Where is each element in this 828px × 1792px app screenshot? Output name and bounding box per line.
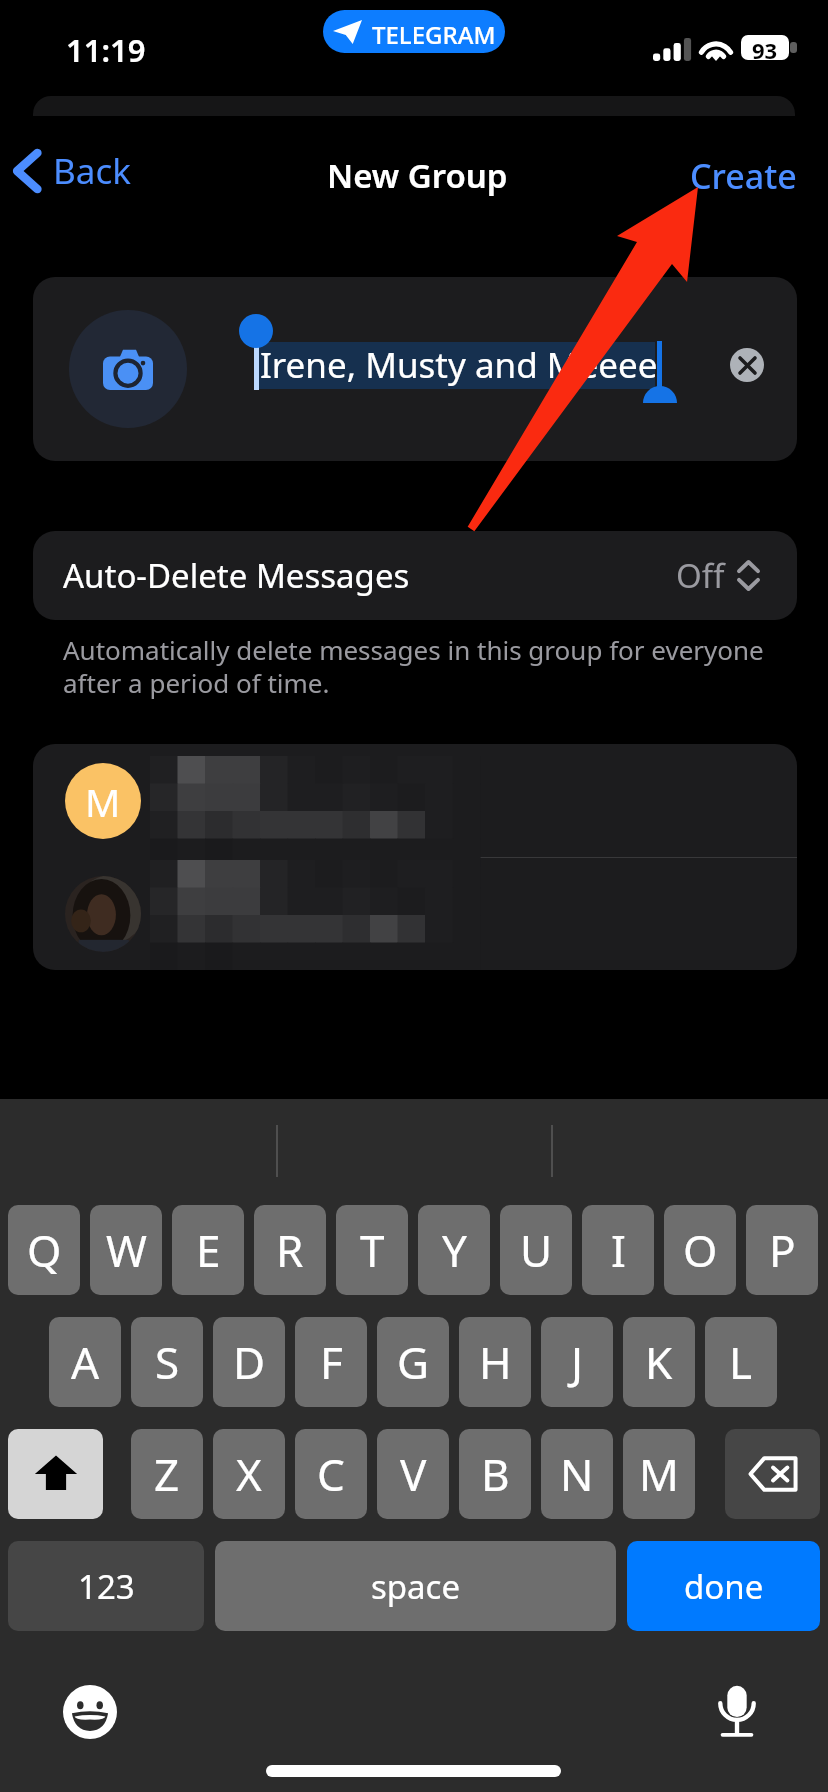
button[interactable]: Q (8, 1205, 80, 1295)
staticText: M (85, 775, 121, 828)
button[interactable]: H (459, 1317, 531, 1407)
button[interactable]: M (33, 744, 797, 857)
staticText: C (317, 1444, 345, 1504)
staticText: N (560, 1444, 594, 1504)
staticText: T (360, 1220, 385, 1280)
staticText: O (683, 1220, 718, 1280)
button[interactable]: A (49, 1317, 121, 1407)
button[interactable]: I (582, 1205, 654, 1295)
button[interactable]: G (377, 1317, 449, 1407)
staticText: J (571, 1332, 584, 1392)
button[interactable]: F (295, 1317, 367, 1407)
staticText: S (155, 1332, 180, 1392)
button[interactable]: C (295, 1429, 367, 1519)
staticText: G (397, 1332, 430, 1392)
button[interactable]: K (623, 1317, 695, 1407)
staticText: TELEGRAM (372, 18, 496, 51)
button[interactable]: T (336, 1205, 408, 1295)
staticText: E (196, 1220, 221, 1280)
staticText: H (479, 1332, 512, 1392)
button[interactable]: Auto-Delete Messages (33, 531, 797, 620)
button[interactable] (33, 857, 797, 970)
button[interactable]: J (541, 1317, 613, 1407)
staticText: L (729, 1332, 753, 1392)
button[interactable]: done (627, 1541, 820, 1631)
staticText: Automatically delete messages in this gr… (63, 632, 769, 701)
button[interactable]: Z (131, 1429, 203, 1519)
staticText: Off (676, 553, 725, 598)
button[interactable]: S (131, 1317, 203, 1407)
button[interactable]: N (541, 1429, 613, 1519)
staticText: M (639, 1444, 679, 1504)
staticText: Y (442, 1220, 467, 1280)
button[interactable]: Dictation (704, 1676, 770, 1742)
button[interactable]: space (215, 1541, 616, 1631)
button[interactable]: E (172, 1205, 244, 1295)
staticText: Z (154, 1444, 180, 1504)
button[interactable]: D (213, 1317, 285, 1407)
button[interactable]: Emoji keyboard (57, 1679, 123, 1745)
staticText: space (371, 1564, 461, 1609)
staticText: P (769, 1220, 796, 1280)
staticText: U (520, 1220, 553, 1280)
button[interactable]: V (377, 1429, 449, 1519)
button[interactable]: R (254, 1205, 326, 1295)
button[interactable]: Backspace (725, 1429, 820, 1519)
staticText: Irene, Musty and Meeee (260, 341, 658, 389)
staticText: 11:19 (66, 29, 146, 71)
staticText: I (611, 1220, 626, 1280)
staticText: done (684, 1564, 764, 1609)
button[interactable]: W (90, 1205, 162, 1295)
button[interactable]: Y (418, 1205, 490, 1295)
button[interactable]: L (705, 1317, 777, 1407)
button[interactable]: X (213, 1429, 285, 1519)
staticText: D (233, 1332, 266, 1392)
button[interactable]: U (500, 1205, 572, 1295)
staticText: W (106, 1220, 147, 1280)
staticText: R (276, 1220, 304, 1280)
staticText: Back (53, 147, 131, 195)
staticText: A (71, 1332, 100, 1392)
staticText: K (645, 1332, 673, 1392)
button[interactable]: TELEGRAM (323, 10, 505, 53)
staticText: B (481, 1444, 510, 1504)
staticText: V (400, 1444, 427, 1504)
staticText: F (320, 1332, 343, 1392)
button[interactable]: O (664, 1205, 736, 1295)
button[interactable]: Create (680, 147, 807, 205)
staticText: Auto-Delete Messages (63, 553, 410, 598)
staticText: Q (27, 1220, 62, 1280)
staticText: X (236, 1444, 262, 1504)
staticText: 123 (78, 1564, 135, 1609)
button[interactable]: B (459, 1429, 531, 1519)
staticText: 93 (752, 35, 778, 60)
button[interactable]: Back (6, 141, 141, 201)
button[interactable]: Set group photo (69, 310, 187, 428)
button[interactable]: Clear text (730, 348, 764, 382)
staticText: Create (690, 153, 797, 199)
staticText: New Group (327, 153, 508, 198)
button[interactable]: M (623, 1429, 695, 1519)
button[interactable]: Shift (8, 1429, 103, 1519)
button[interactable]: 123 (8, 1541, 204, 1631)
button[interactable]: P (746, 1205, 818, 1295)
